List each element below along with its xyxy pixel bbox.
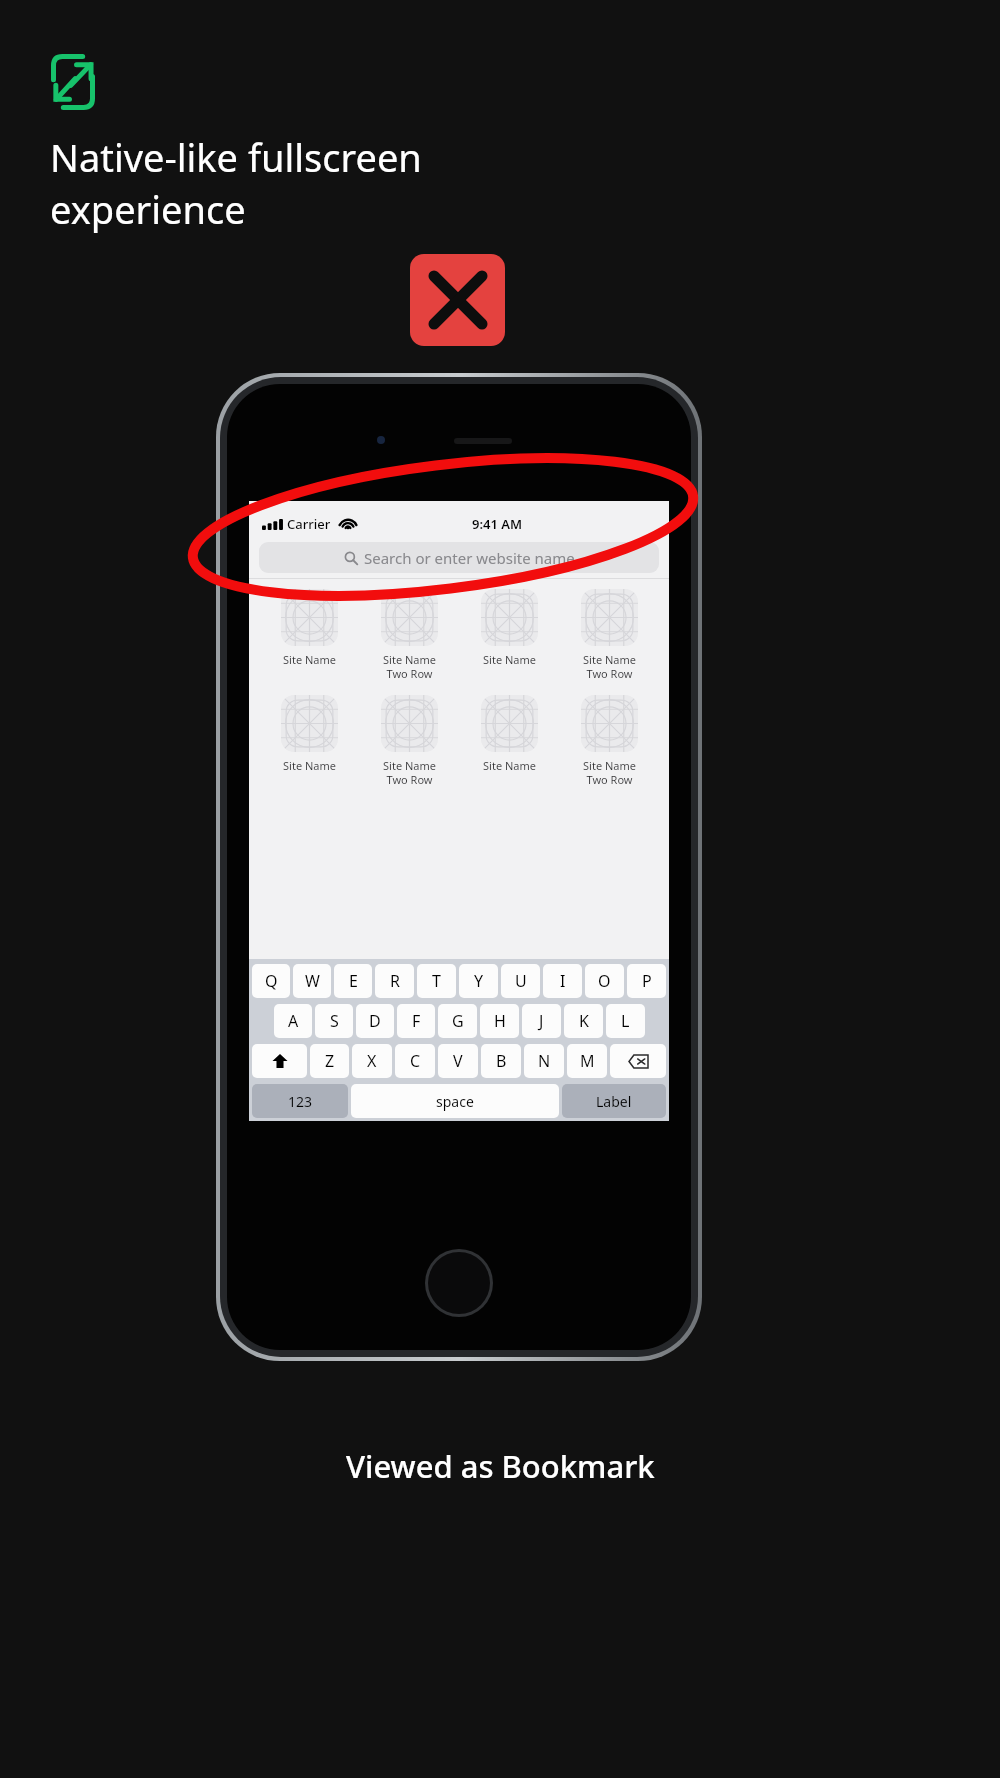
- button[interactable]: Shift: [252, 1044, 307, 1078]
- button[interactable]: W: [293, 964, 331, 998]
- button[interactable]: Site Name Two Row: [359, 695, 459, 787]
- staticText: Viewed as Bookmark: [346, 1445, 655, 1487]
- staticText: W: [305, 970, 320, 992]
- button[interactable]: O: [585, 964, 624, 998]
- staticText: L: [621, 1010, 630, 1032]
- button[interactable]: 123: [252, 1084, 348, 1118]
- staticText: Carrier: [287, 515, 331, 533]
- button[interactable]: Site Name: [459, 695, 559, 773]
- staticText: Z: [325, 1050, 335, 1072]
- button[interactable]: Backspace: [610, 1044, 666, 1078]
- staticText: J: [539, 1010, 544, 1032]
- button[interactable]: Site Name: [259, 695, 359, 773]
- staticText: Label: [596, 1092, 632, 1111]
- button[interactable]: space: [351, 1084, 559, 1118]
- button[interactable]: R: [375, 964, 414, 998]
- staticText: K: [579, 1010, 589, 1032]
- staticText: 9:41 AM: [472, 515, 523, 533]
- button[interactable]: S: [315, 1004, 353, 1038]
- button[interactable]: Q: [252, 964, 290, 998]
- button[interactable]: J: [522, 1004, 561, 1038]
- button[interactable]: Site Name: [459, 589, 559, 667]
- staticText: F: [412, 1010, 421, 1032]
- button[interactable]: Close: [410, 254, 505, 346]
- staticText: Site Name: [483, 758, 536, 773]
- staticText: N: [538, 1050, 551, 1072]
- button[interactable]: Site Name Two Row: [559, 695, 659, 787]
- button[interactable]: A: [274, 1004, 312, 1038]
- staticText: Q: [265, 970, 278, 992]
- staticText: Site Name: [283, 758, 336, 773]
- button[interactable]: L: [606, 1004, 645, 1038]
- staticText: U: [515, 970, 527, 992]
- button[interactable]: Site Name: [259, 589, 359, 667]
- staticText: Search or enter website name: [364, 548, 575, 568]
- button[interactable]: V: [438, 1044, 478, 1078]
- staticText: S: [330, 1010, 339, 1032]
- button[interactable]: N: [524, 1044, 564, 1078]
- button[interactable]: Z: [310, 1044, 349, 1078]
- button[interactable]: P: [627, 964, 666, 998]
- staticText: Site Name Two Row: [383, 758, 436, 787]
- button[interactable]: H: [480, 1004, 519, 1038]
- button[interactable]: Y: [459, 964, 498, 998]
- staticText: Site Name: [283, 652, 336, 667]
- button[interactable]: M: [567, 1044, 607, 1078]
- button[interactable]: Search or enter website name: [259, 542, 659, 573]
- staticText: Site Name Two Row: [583, 652, 636, 681]
- staticText: P: [642, 970, 652, 992]
- staticText: M: [580, 1050, 595, 1072]
- staticText: Y: [474, 970, 484, 992]
- staticText: R: [390, 970, 400, 992]
- staticText: space: [436, 1092, 474, 1111]
- button[interactable]: C: [395, 1044, 435, 1078]
- staticText: A: [288, 1010, 299, 1032]
- staticText: T: [432, 970, 441, 992]
- staticText: V: [453, 1050, 463, 1072]
- button[interactable]: Home: [425, 1249, 493, 1317]
- staticText: E: [349, 970, 358, 992]
- staticText: Site Name Two Row: [583, 758, 636, 787]
- staticText: Native-like fullscreen experience: [50, 131, 422, 235]
- button[interactable]: Label: [562, 1084, 666, 1118]
- staticText: H: [494, 1010, 506, 1032]
- button[interactable]: D: [356, 1004, 394, 1038]
- button[interactable]: F: [397, 1004, 435, 1038]
- button[interactable]: I: [543, 964, 582, 998]
- staticText: I: [560, 970, 566, 992]
- button[interactable]: U: [501, 964, 540, 998]
- staticText: D: [369, 1010, 381, 1032]
- staticText: 123: [288, 1092, 313, 1111]
- button[interactable]: K: [564, 1004, 603, 1038]
- button[interactable]: X: [352, 1044, 392, 1078]
- button[interactable]: B: [481, 1044, 521, 1078]
- staticText: Site Name Two Row: [383, 652, 436, 681]
- staticText: B: [496, 1050, 507, 1072]
- staticText: O: [598, 970, 611, 992]
- button[interactable]: E: [334, 964, 372, 998]
- button[interactable]: G: [438, 1004, 477, 1038]
- staticText: G: [452, 1010, 464, 1032]
- button[interactable]: Site Name Two Row: [359, 589, 459, 681]
- button[interactable]: Fullscreen: [51, 54, 95, 110]
- staticText: X: [367, 1050, 377, 1072]
- staticText: C: [410, 1050, 421, 1072]
- staticText: Site Name: [483, 652, 536, 667]
- button[interactable]: Site Name Two Row: [559, 589, 659, 681]
- button[interactable]: T: [417, 964, 456, 998]
